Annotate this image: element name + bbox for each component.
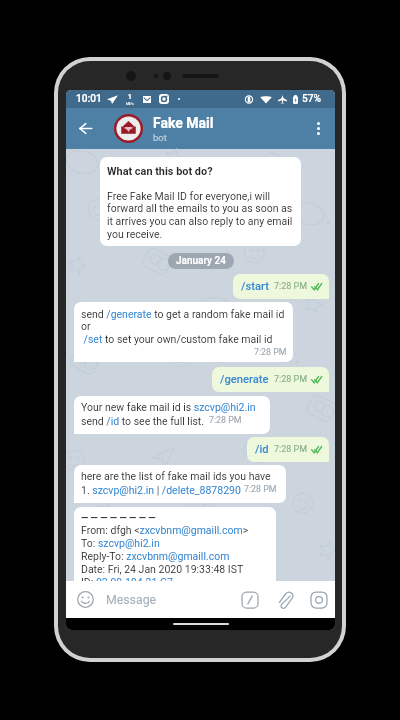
staticText: 1 [128,93,132,101]
staticText: bot [153,132,167,143]
staticText: Date: Fri, 24 Jan 2020 19:33:48 IST [81,563,244,575]
button[interactable]: Emoji [73,587,98,612]
staticText: From: dfgh <zxcvbnm@gmaill.com> [81,524,249,536]
staticText: 10:01 [76,93,102,105]
staticText: 7:28 PM [274,374,308,385]
staticText: 57% [302,93,322,105]
staticText: Fake Mail [153,115,214,131]
staticText: 7:28 PM [209,415,242,425]
staticText: Message [106,593,157,607]
button[interactable]: Camera [306,587,331,612]
staticText: What can this bot do? [107,165,213,178]
staticText: To: szcvp@hi2.in [81,537,160,549]
staticText: Free Fake Mail ID for everyone,i will fo… [107,190,295,241]
button[interactable]: send /generate to get a random fake mail… [74,302,293,362]
staticText: January 24 [176,255,226,267]
button[interactable]: Attach file [272,587,297,612]
staticText: Reply-To: zxcvbnm@gmaill.com [81,550,230,562]
staticText: /start [241,280,269,293]
staticText: 7:28 PM [254,347,287,357]
button[interactable]: here are the list of fake mail ids you h… [74,465,286,503]
button[interactable]: Bot commands [237,587,262,612]
staticText: 1. szcvp@hi2.in | /delete_8878290 [81,484,241,496]
button[interactable]: — — — — — — — — [74,507,276,588]
staticText: ID: 02.99.194.21 G7 [81,576,173,588]
button[interactable]: What can this bot do? [100,157,301,246]
button[interactable]: /generate [212,367,329,392]
staticText: Your new fake mail id is szcvp@hi2.in [81,401,256,413]
staticText: 7:28 PM [274,444,308,455]
staticText: send /generate to get a random fake mail… [81,308,287,346]
button[interactable]: Your new fake mail id is szcvp@hi2.in [74,396,270,434]
staticText: — — — — — — — — [81,512,156,523]
staticText: 7:28 PM [244,484,277,494]
staticText: kB/s [126,101,134,105]
staticText: /id [255,443,269,456]
staticText: here are the list of fake mail ids you h… [81,470,271,482]
button[interactable]: Back [66,108,104,149]
staticText: /generate [220,373,269,386]
staticText: 7:28 PM [274,281,308,292]
button[interactable]: /id [247,437,329,462]
staticText: send /id to see the full list. [81,415,205,427]
button[interactable]: /start [233,274,329,299]
button[interactable]: More options [302,108,335,149]
